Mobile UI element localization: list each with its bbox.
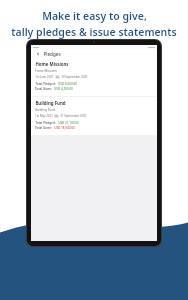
- button[interactable]: Home Missions: [31, 58, 157, 96]
- staticText: Total Given:: [35, 87, 52, 91]
- staticText: Total Pledged:: [35, 121, 56, 125]
- staticText: Total Given:: [35, 126, 52, 130]
- staticText: Building Fund: [35, 100, 66, 106]
- staticText: USD 4,200.00: [54, 87, 73, 91]
- staticText: tally pledges & issue statements: [11, 25, 177, 39]
- staticText: Home Missions: [35, 69, 57, 73]
- staticText: to: [55, 114, 58, 118]
- staticText: 31 September 2021: [60, 114, 87, 118]
- staticText: Pledges: [43, 51, 61, 57]
- staticText: USD 8,650.00: [58, 82, 77, 86]
- staticText: USD 18,040.00: [54, 126, 75, 130]
- staticText: Building Fund: [35, 108, 55, 112]
- staticText: USD 21,100.00: [58, 121, 79, 125]
- staticText: 30 September 2021: [61, 75, 88, 79]
- staticText: 1st June 2021: [35, 75, 54, 79]
- staticText: 1st May 2021: [35, 114, 53, 118]
- button[interactable]: Building Fund: [31, 97, 157, 135]
- staticText: Total Pledged:: [35, 82, 56, 86]
- button[interactable]: Back: [34, 50, 41, 57]
- staticText: Home Missions: [35, 61, 69, 67]
- staticText: to: [56, 75, 59, 79]
- staticText: Make it easy to give,: [42, 9, 147, 23]
